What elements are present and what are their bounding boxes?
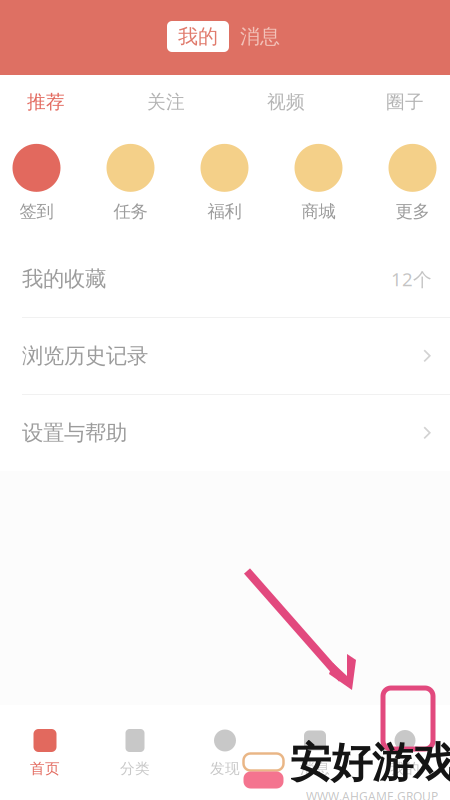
button[interactable]: 我的收藏: [0, 241, 450, 317]
staticText: 12个: [391, 267, 432, 291]
button[interactable]: 发现: [180, 721, 270, 783]
button[interactable]: 商城: [271, 144, 365, 222]
button[interactable]: 消息: [229, 21, 291, 52]
staticText: WWW.AHGAME.GROUP: [306, 788, 438, 800]
staticText: 视频: [267, 90, 305, 113]
staticText: 更多: [395, 201, 429, 222]
button[interactable]: 关注: [114, 81, 218, 123]
staticText: 推荐: [27, 90, 65, 113]
staticText: 任务: [113, 201, 147, 222]
button[interactable]: 设置与帮助: [0, 395, 450, 471]
button[interactable]: 首页: [0, 721, 90, 783]
staticText: 发现: [210, 759, 240, 777]
staticText: 福利: [207, 201, 241, 222]
staticText: 浏览历史记录: [22, 343, 148, 369]
button[interactable]: 福利: [177, 144, 271, 222]
staticText: 关注: [147, 90, 185, 113]
button[interactable]: 我的: [167, 21, 229, 52]
button[interactable]: 消息: [270, 721, 360, 783]
button[interactable]: 推荐: [0, 81, 98, 123]
staticText: 消息: [300, 759, 330, 777]
button[interactable]: 我的: [360, 721, 450, 783]
staticText: 消息: [240, 24, 280, 49]
staticText: 我的: [390, 759, 420, 777]
button[interactable]: 签到: [0, 144, 83, 222]
button[interactable]: 分类: [90, 721, 180, 783]
staticText: 安好游戏: [290, 738, 450, 788]
button[interactable]: 圈子: [353, 81, 450, 123]
staticText: 我的收藏: [22, 266, 106, 292]
staticText: 分类: [120, 759, 150, 777]
button[interactable]: 任务: [83, 144, 177, 222]
staticText: 首页: [30, 759, 60, 777]
button[interactable]: 视频: [234, 81, 338, 123]
staticText: 商城: [301, 201, 335, 222]
button[interactable]: 浏览历史记录: [0, 318, 450, 394]
button[interactable]: 更多: [365, 144, 450, 222]
staticText: 签到: [19, 201, 53, 222]
staticText: 圈子: [386, 90, 424, 113]
staticText: 我的: [178, 24, 218, 49]
staticText: 设置与帮助: [22, 420, 127, 446]
